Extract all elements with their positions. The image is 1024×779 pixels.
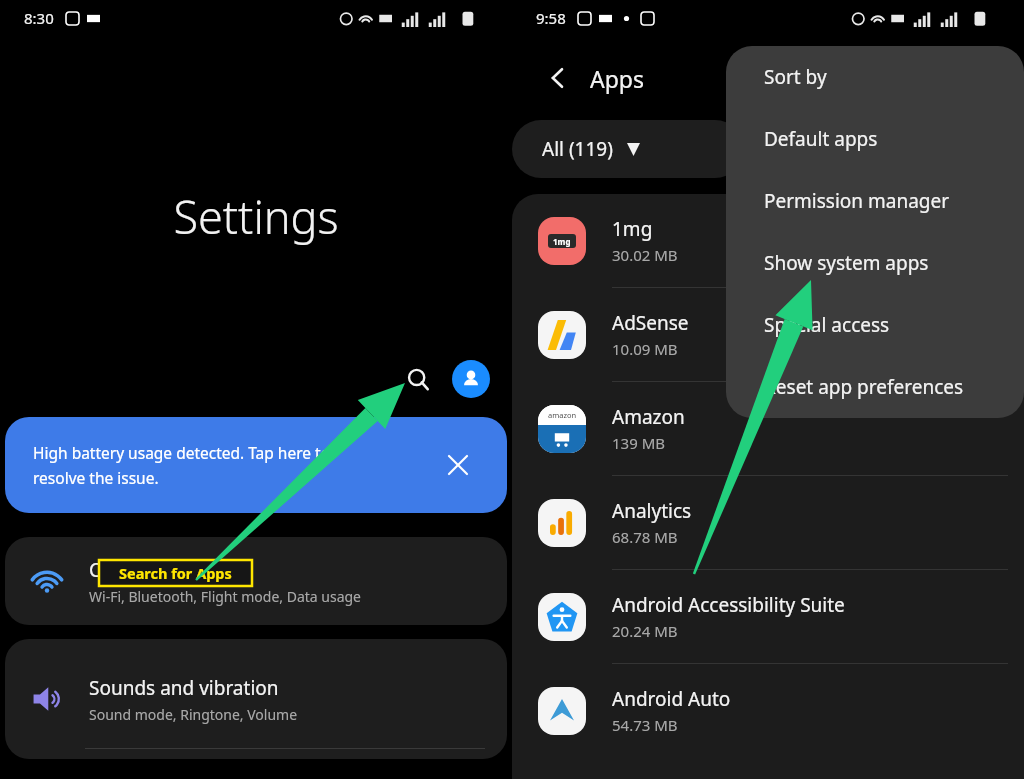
- button[interactable]: Sort by: [726, 46, 1024, 108]
- staticText: Connections: [89, 557, 200, 583]
- staticText: AdSense: [612, 310, 689, 336]
- button[interactable]: Dismiss: [441, 448, 475, 482]
- staticText: 1mg: [612, 216, 653, 242]
- button[interactable]: High battery usage detected. Tap here to…: [5, 417, 507, 513]
- staticText: Settings: [0, 186, 512, 247]
- staticText: Sound mode, Ringtone, Volume: [89, 705, 298, 724]
- staticText: 9:58: [536, 8, 566, 28]
- staticText: 68.78 MB: [612, 527, 678, 547]
- staticText: All (119): [542, 136, 613, 162]
- button[interactable]: Reset app preferences: [726, 356, 1024, 418]
- staticText: High battery usage detected. Tap here to…: [33, 442, 331, 489]
- staticText: Default apps: [764, 126, 878, 152]
- staticText: amazon: [548, 410, 577, 420]
- button[interactable]: 1mg: [512, 194, 1024, 287]
- button[interactable]: Back: [538, 58, 578, 98]
- staticText: Sounds and vibration: [89, 675, 279, 701]
- staticText: Apps: [590, 63, 645, 94]
- button[interactable]: Permission manager: [726, 170, 1024, 232]
- staticText: Reset app preferences: [764, 374, 964, 400]
- staticText: Sort by: [764, 64, 827, 90]
- staticText: 30.02 MB: [612, 245, 678, 265]
- staticText: Android Auto: [612, 686, 731, 712]
- button[interactable]: Android Accessibility Suite: [512, 570, 1024, 663]
- button[interactable]: Sounds and vibration: [5, 639, 507, 759]
- button[interactable]: Analytics: [512, 476, 1024, 569]
- button[interactable]: amazon: [512, 382, 1024, 475]
- button[interactable]: AdSense: [512, 288, 1024, 381]
- staticText: Show system apps: [764, 250, 929, 276]
- staticText: 54.73 MB: [612, 715, 678, 735]
- staticText: 8:30: [24, 8, 54, 28]
- staticText: Android Accessibility Suite: [612, 592, 845, 618]
- staticText: 20.24 MB: [612, 621, 678, 641]
- button[interactable]: Connections: [5, 537, 507, 625]
- staticText: Search for Apps: [119, 563, 232, 583]
- button[interactable]: Default apps: [726, 108, 1024, 170]
- button[interactable]: Android Auto: [512, 664, 1024, 757]
- button[interactable]: All (119): [512, 120, 744, 178]
- staticText: 10.09 MB: [612, 339, 678, 359]
- staticText: Special access: [764, 312, 890, 338]
- staticText: Amazon: [612, 404, 685, 430]
- staticText: Analytics: [612, 498, 692, 524]
- button[interactable]: Show system apps: [726, 232, 1024, 294]
- button[interactable]: Account: [452, 360, 490, 398]
- staticText: Permission manager: [764, 188, 950, 214]
- button[interactable]: Search: [396, 357, 440, 401]
- staticText: 1mg: [553, 236, 571, 247]
- button[interactable]: Special access: [726, 294, 1024, 356]
- staticText: Wi-Fi, Bluetooth, Flight mode, Data usag…: [89, 587, 362, 606]
- staticText: 139 MB: [612, 433, 665, 453]
